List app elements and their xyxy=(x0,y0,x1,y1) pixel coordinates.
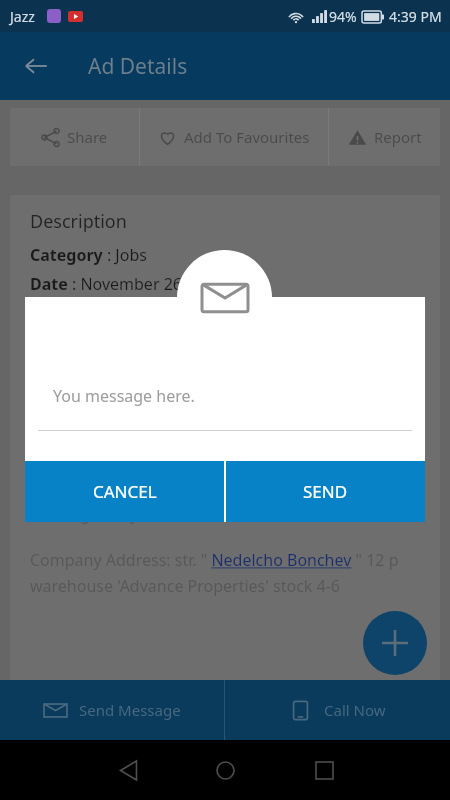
staticText: Call Now xyxy=(324,700,386,720)
staticText: Starting salary: 800 BGN net. xyxy=(30,503,246,525)
button[interactable]: Recents xyxy=(304,750,344,790)
staticText: Company Address: str. " Nedelcho Bonchev… xyxy=(30,549,399,571)
staticText: You message here. xyxy=(53,385,195,407)
button[interactable]: SEND xyxy=(226,461,425,522)
staticText: Category : Jobs xyxy=(30,244,147,266)
staticText: CANCEL xyxy=(93,480,157,503)
staticText: 4:39 PM xyxy=(389,7,442,26)
staticText: Share xyxy=(67,127,108,147)
button[interactable]: Call Now xyxy=(225,680,450,740)
button[interactable]: Report xyxy=(329,108,440,166)
staticText: Send Message xyxy=(79,700,181,720)
button[interactable]: Send Message xyxy=(0,680,224,740)
staticText: Date : November 26 xyxy=(30,273,182,295)
staticText: Ad Details xyxy=(88,52,188,81)
staticText: 94% xyxy=(329,7,357,26)
button[interactable]: Back xyxy=(108,750,148,790)
staticText: Jazz xyxy=(10,7,35,26)
staticText: Report xyxy=(374,127,422,147)
button[interactable]: CANCEL xyxy=(25,461,224,522)
staticText: warehouse 'Advance Properties' stock 4-6 xyxy=(30,575,341,597)
button[interactable]: Share xyxy=(10,108,139,166)
button[interactable]: Back xyxy=(14,44,58,88)
staticText: SEND xyxy=(303,480,348,503)
staticText: Description xyxy=(30,209,127,234)
button[interactable]: Home xyxy=(205,750,245,790)
button[interactable]: Add xyxy=(363,611,427,675)
button[interactable]: Add To Favourites xyxy=(140,108,328,166)
staticText: Add To Favourites xyxy=(184,127,310,147)
